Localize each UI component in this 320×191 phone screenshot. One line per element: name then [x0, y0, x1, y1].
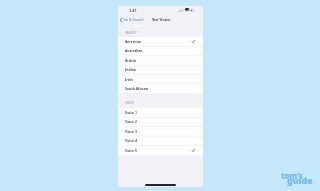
staticText: American	[125, 39, 142, 44]
staticText: Voice 2	[125, 119, 137, 124]
button[interactable]: South African	[118, 84, 203, 93]
button[interactable]: Indian	[118, 65, 203, 74]
other: Selected	[192, 149, 195, 152]
button[interactable]: Back	[118, 15, 146, 24]
button[interactable]: Voice 1	[118, 108, 203, 117]
staticText: tom's	[281, 171, 303, 182]
staticText: Indian	[125, 67, 136, 72]
staticText: Voice 4	[125, 138, 137, 143]
other: Back	[120, 18, 122, 22]
staticText: Siri Voice	[152, 17, 171, 23]
button[interactable]: British	[118, 56, 203, 65]
staticText: Voice 5	[125, 148, 137, 153]
button[interactable]: Voice 3	[118, 127, 203, 136]
staticText: British	[125, 58, 137, 63]
other: Selected	[192, 40, 195, 43]
button[interactable]: Australian	[118, 46, 203, 55]
staticText: South African	[125, 86, 148, 91]
staticText: Siri & Search	[123, 17, 144, 22]
staticText: Irish	[125, 77, 133, 82]
button[interactable]: Voice 5	[118, 146, 203, 155]
staticText: VARIETY	[125, 31, 137, 35]
button[interactable]: Voice 2	[118, 117, 203, 126]
button[interactable]: American	[118, 37, 203, 46]
staticText: Australian	[125, 48, 143, 53]
button[interactable]: Voice 4	[118, 136, 203, 145]
staticText: guide	[287, 174, 313, 187]
button[interactable]: Irish	[118, 75, 203, 84]
staticText: Voice 3	[125, 129, 137, 134]
staticText: 3:41	[129, 8, 137, 13]
staticText: VOICE	[125, 101, 134, 105]
staticText: Voice 1	[125, 110, 137, 115]
